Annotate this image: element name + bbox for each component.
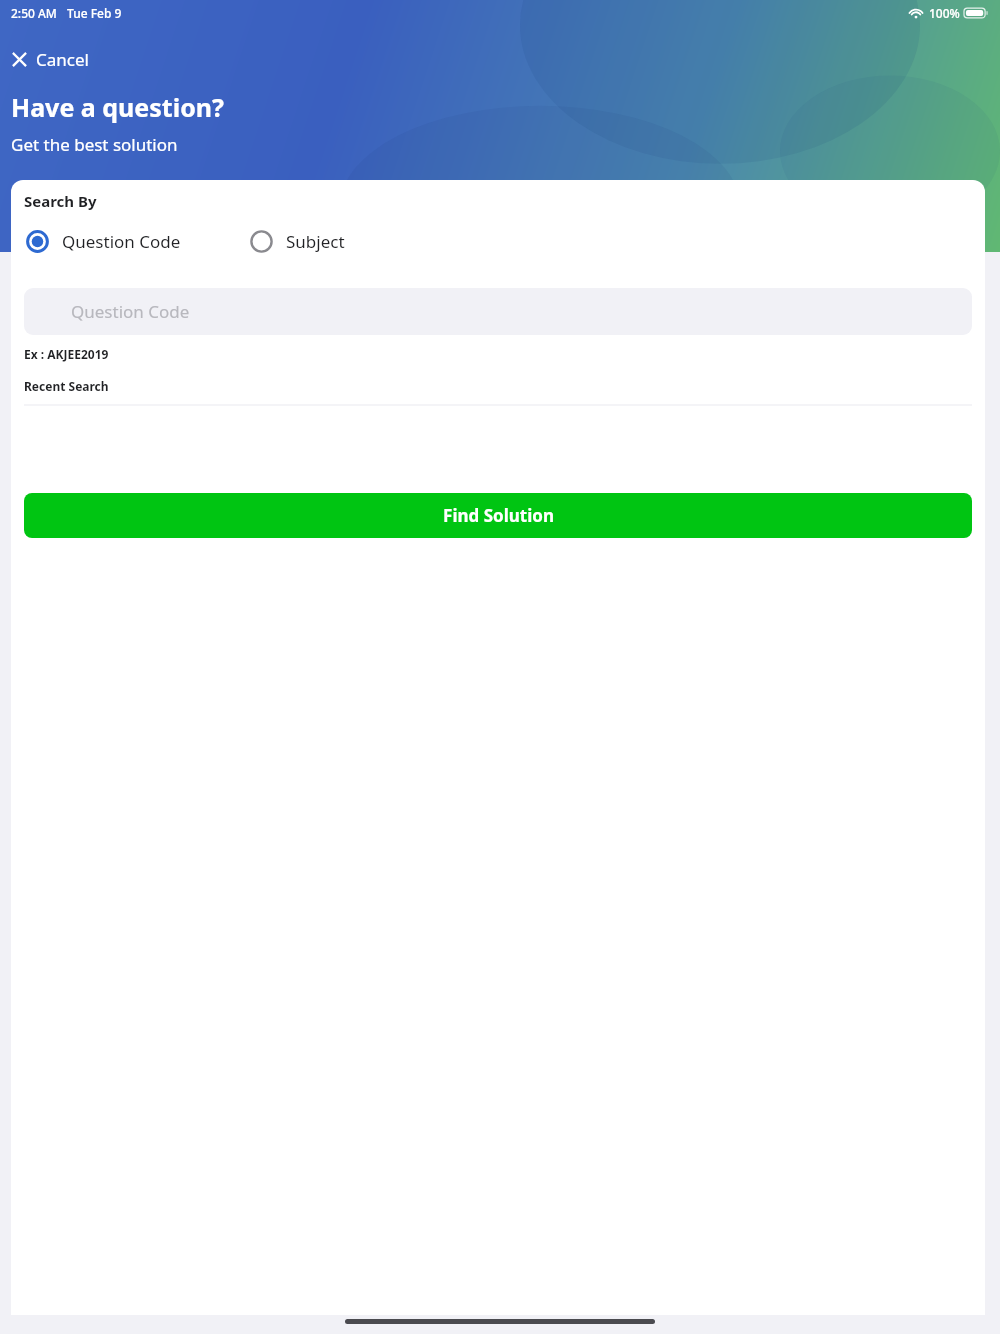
staticText: Have a question? bbox=[11, 90, 224, 124]
button[interactable]: Subject bbox=[248, 228, 347, 255]
staticText: Get the best solution bbox=[11, 133, 178, 156]
staticText: Search By bbox=[24, 191, 97, 211]
staticText: Tue Feb 9 bbox=[67, 5, 122, 21]
staticText: 100% bbox=[929, 5, 960, 21]
staticText: Cancel bbox=[36, 48, 89, 71]
button[interactable]: Cancel bbox=[8, 44, 92, 75]
staticText: Subject bbox=[286, 230, 345, 253]
button[interactable]: Find Solution bbox=[24, 493, 972, 538]
other: Cancel bbox=[11, 51, 28, 68]
staticText: 2:50 AM bbox=[11, 5, 57, 21]
staticText: Question Code bbox=[62, 230, 181, 253]
staticText: Question Code bbox=[71, 300, 190, 323]
staticText: Ex : AKJEE2019 bbox=[24, 346, 109, 362]
button[interactable]: Question Code bbox=[24, 228, 183, 255]
button[interactable]: Question Code bbox=[24, 288, 972, 335]
staticText: Recent Search bbox=[24, 378, 109, 394]
staticText: Find Solution bbox=[443, 504, 554, 527]
